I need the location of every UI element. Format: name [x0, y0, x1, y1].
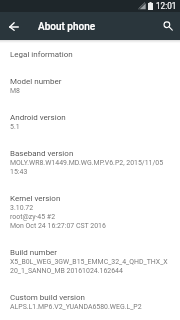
button[interactable]: Navigate up — [2, 12, 26, 40]
button[interactable]: Build number — [0, 238, 180, 283]
button[interactable]: Baseband version — [0, 139, 180, 184]
button[interactable]: Model number — [0, 67, 180, 103]
button[interactable]: Custom build version — [0, 283, 180, 319]
staticText: Custom build version — [10, 291, 85, 302]
button[interactable]: Search — [156, 12, 180, 40]
staticText: 12:01 — [156, 1, 177, 11]
button[interactable]: Legal information — [0, 40, 180, 67]
staticText: 3.10.72 root@zy-45 #2 Mon Oct 24 16:27:0… — [10, 203, 106, 230]
staticText: ALPS.L1.MP6.V2_YUANDA6580.WEG.L_P2 — [10, 302, 142, 311]
staticText: Android version — [10, 111, 66, 122]
staticText: MOLY.WR8.W1449.MD.WG.MP.V6.P2, 2015/11/0… — [10, 158, 170, 176]
staticText: Kernel version — [10, 192, 61, 203]
staticText: About phone — [38, 21, 96, 33]
staticText: Baseband version — [10, 147, 74, 158]
staticText: Model number — [10, 75, 62, 86]
staticText: 5.1 — [10, 122, 20, 131]
button[interactable]: Android version — [0, 103, 180, 139]
staticText: X5_B0L_WEG_3GW_B15_EMMC_32_4_QHD_THX_X20… — [10, 257, 170, 275]
staticText: M8 — [10, 86, 20, 95]
staticText: Legal information — [10, 48, 73, 59]
button[interactable]: Kernel version — [0, 184, 180, 238]
staticText: Build number — [10, 246, 58, 257]
